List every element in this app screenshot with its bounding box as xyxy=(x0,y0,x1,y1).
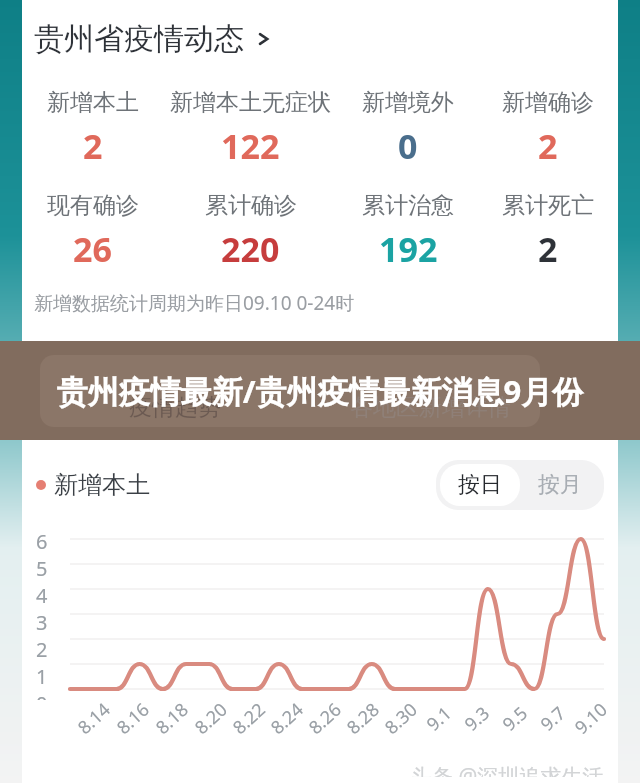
staticText: 8.20 xyxy=(189,697,233,740)
staticText: 1 xyxy=(36,663,48,690)
button[interactable]: 现有确诊 xyxy=(22,191,163,272)
staticText: 220 xyxy=(221,226,280,272)
staticText: 8.28 xyxy=(341,697,385,740)
staticText: 疫情趋势 xyxy=(129,393,221,422)
staticText: 累计确诊 xyxy=(205,191,297,220)
staticText: 8.18 xyxy=(150,697,194,740)
staticText: 0 xyxy=(36,690,48,700)
staticText: 贵州省疫情动态 xyxy=(34,20,244,58)
staticText: 0 xyxy=(398,123,418,169)
button[interactable]: 累计确诊 xyxy=(163,191,338,272)
staticText: 新增本土无症状 xyxy=(170,88,331,117)
button[interactable]: 按日 xyxy=(440,464,520,506)
staticText: 9.10 xyxy=(569,697,613,740)
button[interactable]: 按月 xyxy=(520,464,600,506)
staticText: 新增本土 xyxy=(47,88,139,117)
button[interactable]: 新增境外 xyxy=(338,88,478,169)
staticText: 新增确诊 xyxy=(502,88,594,117)
staticText: 按日 xyxy=(458,471,502,499)
staticText: 9.7 xyxy=(535,700,571,736)
staticText: 9.5 xyxy=(497,700,533,736)
staticText: 192 xyxy=(379,226,438,272)
staticText: 9.1 xyxy=(421,700,457,736)
staticText: 新增本土 xyxy=(54,470,150,500)
staticText: 累计死亡 xyxy=(502,191,594,220)
staticText: 按月 xyxy=(538,471,582,499)
staticText: 现有确诊 xyxy=(47,191,139,220)
staticText: 3 xyxy=(36,609,48,636)
staticText: 8.22 xyxy=(227,697,271,740)
staticText: 2 xyxy=(83,123,103,169)
staticText: 8.30 xyxy=(379,697,423,740)
staticText: 8.26 xyxy=(303,697,347,740)
staticText: 新增数据统计周期为昨日09.10 0-24时 xyxy=(34,290,355,316)
button[interactable]: 新增确诊 xyxy=(478,88,618,169)
staticText: 6 xyxy=(36,528,48,555)
staticText: 2 xyxy=(538,226,558,272)
staticText: 2 xyxy=(36,636,48,663)
button[interactable]: 新增本土无症状 xyxy=(163,88,338,169)
button[interactable]: 累计治愈 xyxy=(338,191,478,272)
staticText: 9.3 xyxy=(459,700,495,736)
button[interactable]: 新增本土 xyxy=(22,88,163,169)
staticText: 26 xyxy=(73,226,112,272)
button[interactable]: 贵州省疫情动态 xyxy=(34,20,618,58)
staticText: 8.16 xyxy=(111,697,155,740)
staticText: 2 xyxy=(538,123,558,169)
staticText: 5 xyxy=(36,555,48,582)
staticText: 122 xyxy=(221,123,280,169)
staticText: 4 xyxy=(36,582,48,609)
staticText: 贵州疫情最新/贵州疫情最新消息9月份 xyxy=(24,370,616,412)
staticText: 8.14 xyxy=(72,697,116,740)
staticText: 累计治愈 xyxy=(362,191,454,220)
staticText: 8.24 xyxy=(265,697,309,740)
button[interactable]: 累计死亡 xyxy=(478,191,618,272)
staticText: 新增境外 xyxy=(362,88,454,117)
staticText: 各地区新增详情 xyxy=(350,393,511,422)
staticText: 头条 @深圳追求生活 xyxy=(411,762,604,777)
